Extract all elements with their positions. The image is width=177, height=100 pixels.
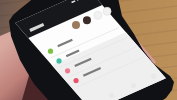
button[interactable]: Photo of a phone showing the discover sc… [0,0,177,100]
